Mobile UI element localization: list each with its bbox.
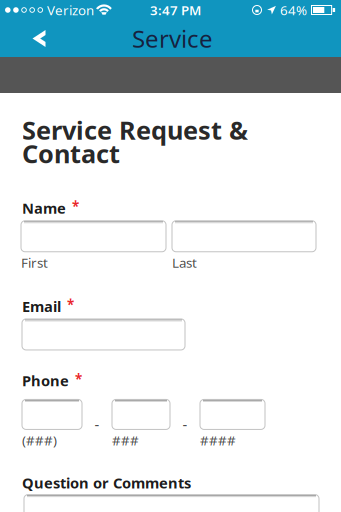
staticText: Last bbox=[172, 254, 197, 271]
staticText: Contact bbox=[22, 137, 120, 170]
staticText: 64% bbox=[280, 1, 307, 19]
staticText: - bbox=[94, 414, 99, 434]
staticText: * bbox=[67, 295, 74, 313]
staticText: 3:47 PM bbox=[150, 1, 201, 19]
staticText: Service bbox=[132, 23, 213, 54]
staticText: Email bbox=[22, 296, 61, 316]
button[interactable]: Back bbox=[0, 20, 62, 57]
staticText: (###) bbox=[22, 431, 57, 449]
staticText: * bbox=[75, 370, 82, 388]
staticText: Question or Comments bbox=[22, 473, 191, 493]
staticText: Phone bbox=[22, 371, 69, 390]
staticText: Verizon bbox=[47, 1, 94, 19]
staticText: #### bbox=[200, 431, 236, 449]
staticText: ### bbox=[112, 431, 139, 449]
staticText: Name bbox=[22, 198, 66, 218]
staticText: - bbox=[182, 414, 187, 434]
staticText: Service Request & bbox=[22, 113, 248, 147]
staticText: * bbox=[72, 197, 79, 215]
staticText: First bbox=[21, 254, 48, 271]
